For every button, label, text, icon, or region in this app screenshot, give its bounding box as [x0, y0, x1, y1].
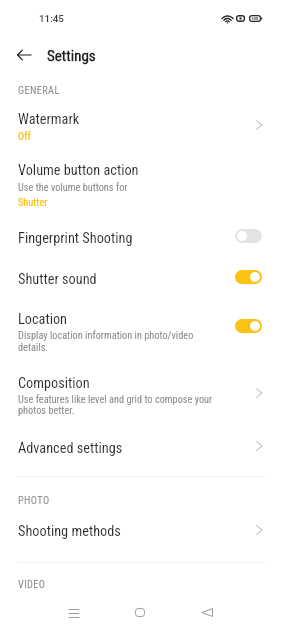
- staticText: Use the volume buttons for: [18, 181, 128, 193]
- button[interactable]: Back: [10, 41, 38, 69]
- staticText: Shutter sound: [18, 271, 97, 288]
- button[interactable]: Watermark Off: [0, 104, 282, 144]
- staticText: Shooting methods: [18, 523, 121, 540]
- button[interactable]: Location: [0, 300, 282, 358]
- button[interactable]: Home: [120, 597, 160, 627]
- button[interactable]: Advanced settings: [0, 430, 282, 466]
- staticText: Off: [18, 130, 31, 142]
- button[interactable]: Switch off: [235, 229, 262, 243]
- staticText: Composition: [18, 375, 90, 392]
- button[interactable]: Back: [187, 597, 227, 627]
- staticText: VIDEO: [18, 578, 46, 590]
- staticText: Shutter: [18, 196, 48, 208]
- staticText: Use features like level and grid to comp…: [18, 393, 228, 417]
- button[interactable]: Composition: [0, 364, 282, 424]
- staticText: 11:45: [39, 13, 64, 24]
- staticText: Settings: [47, 47, 96, 65]
- staticText: Location: [18, 311, 68, 328]
- button[interactable]: Recent apps: [54, 598, 94, 628]
- button[interactable]: Volume button action: [0, 152, 282, 210]
- button[interactable]: Switch on: [235, 270, 262, 284]
- staticText: Volume button action: [18, 162, 139, 179]
- staticText: Display location information in photo/vi…: [18, 329, 208, 354]
- button[interactable]: Shooting methods: [0, 512, 282, 548]
- button[interactable]: Shutter sound: [0, 259, 282, 297]
- staticText: Advanced settings: [18, 440, 123, 457]
- staticText: PHOTO: [18, 494, 50, 506]
- staticText: Fingerprint Shooting: [18, 230, 133, 247]
- button[interactable]: Fingerprint Shooting: [0, 219, 282, 257]
- staticText: GENERAL: [18, 84, 60, 96]
- button[interactable]: Switch on: [235, 319, 262, 333]
- staticText: Watermark: [18, 111, 80, 128]
